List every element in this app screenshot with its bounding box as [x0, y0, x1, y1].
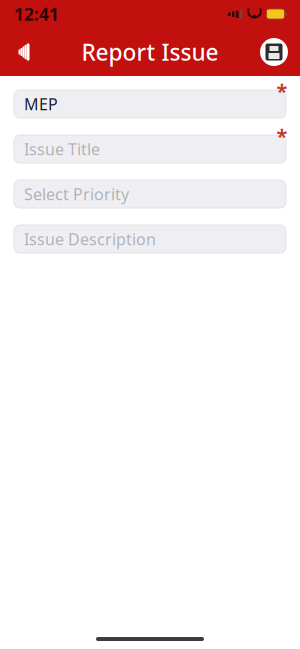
button[interactable]: Save	[252, 30, 296, 74]
staticText: *	[276, 78, 287, 104]
staticText: 12:41	[14, 2, 59, 25]
staticText: Report Issue	[81, 37, 218, 67]
button[interactable]: Back	[2, 30, 46, 74]
button[interactable]: Select Priority	[14, 180, 286, 208]
button[interactable]: Issue Title	[14, 135, 286, 163]
button[interactable]: MEP	[14, 90, 286, 118]
staticText: MEP	[24, 93, 58, 115]
staticText: Issue Description	[24, 228, 156, 250]
staticText: Select Priority	[24, 183, 129, 205]
button[interactable]: Issue Description	[14, 225, 286, 253]
staticText: Issue Title	[24, 138, 100, 160]
staticText: *	[276, 123, 287, 149]
